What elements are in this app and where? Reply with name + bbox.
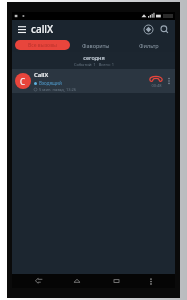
button[interactable]: Call back xyxy=(146,74,166,88)
staticText: Событий: 1 Всего: 1 xyxy=(74,62,114,67)
staticText: Фавориты xyxy=(82,42,110,49)
button[interactable]: Theme xyxy=(141,22,155,36)
button[interactable]: Back xyxy=(27,274,51,288)
staticText: C xyxy=(20,76,26,87)
button[interactable]: C xyxy=(12,69,175,93)
button[interactable]: Menu xyxy=(142,274,160,288)
staticText: CallX xyxy=(34,71,49,79)
button[interactable]: Recent apps xyxy=(104,274,128,288)
staticText: Входящий xyxy=(39,80,62,86)
staticText: 5 мин. назад, 13:26 xyxy=(39,87,77,92)
button[interactable]: Search xyxy=(157,22,171,36)
button[interactable]: More options xyxy=(166,69,172,93)
staticText: callX xyxy=(31,22,54,36)
button[interactable]: Фильтр xyxy=(122,38,175,52)
button[interactable]: Home xyxy=(65,274,89,288)
button[interactable]: Open navigation drawer xyxy=(16,23,28,35)
staticText: сегодня xyxy=(83,54,105,61)
staticText: Фильтр xyxy=(139,42,159,49)
button[interactable]: Фавориты xyxy=(70,38,122,52)
button[interactable]: Все вызовы xyxy=(15,40,70,50)
staticText: 00:48 xyxy=(151,83,162,88)
staticText: Все вызовы xyxy=(28,42,57,49)
